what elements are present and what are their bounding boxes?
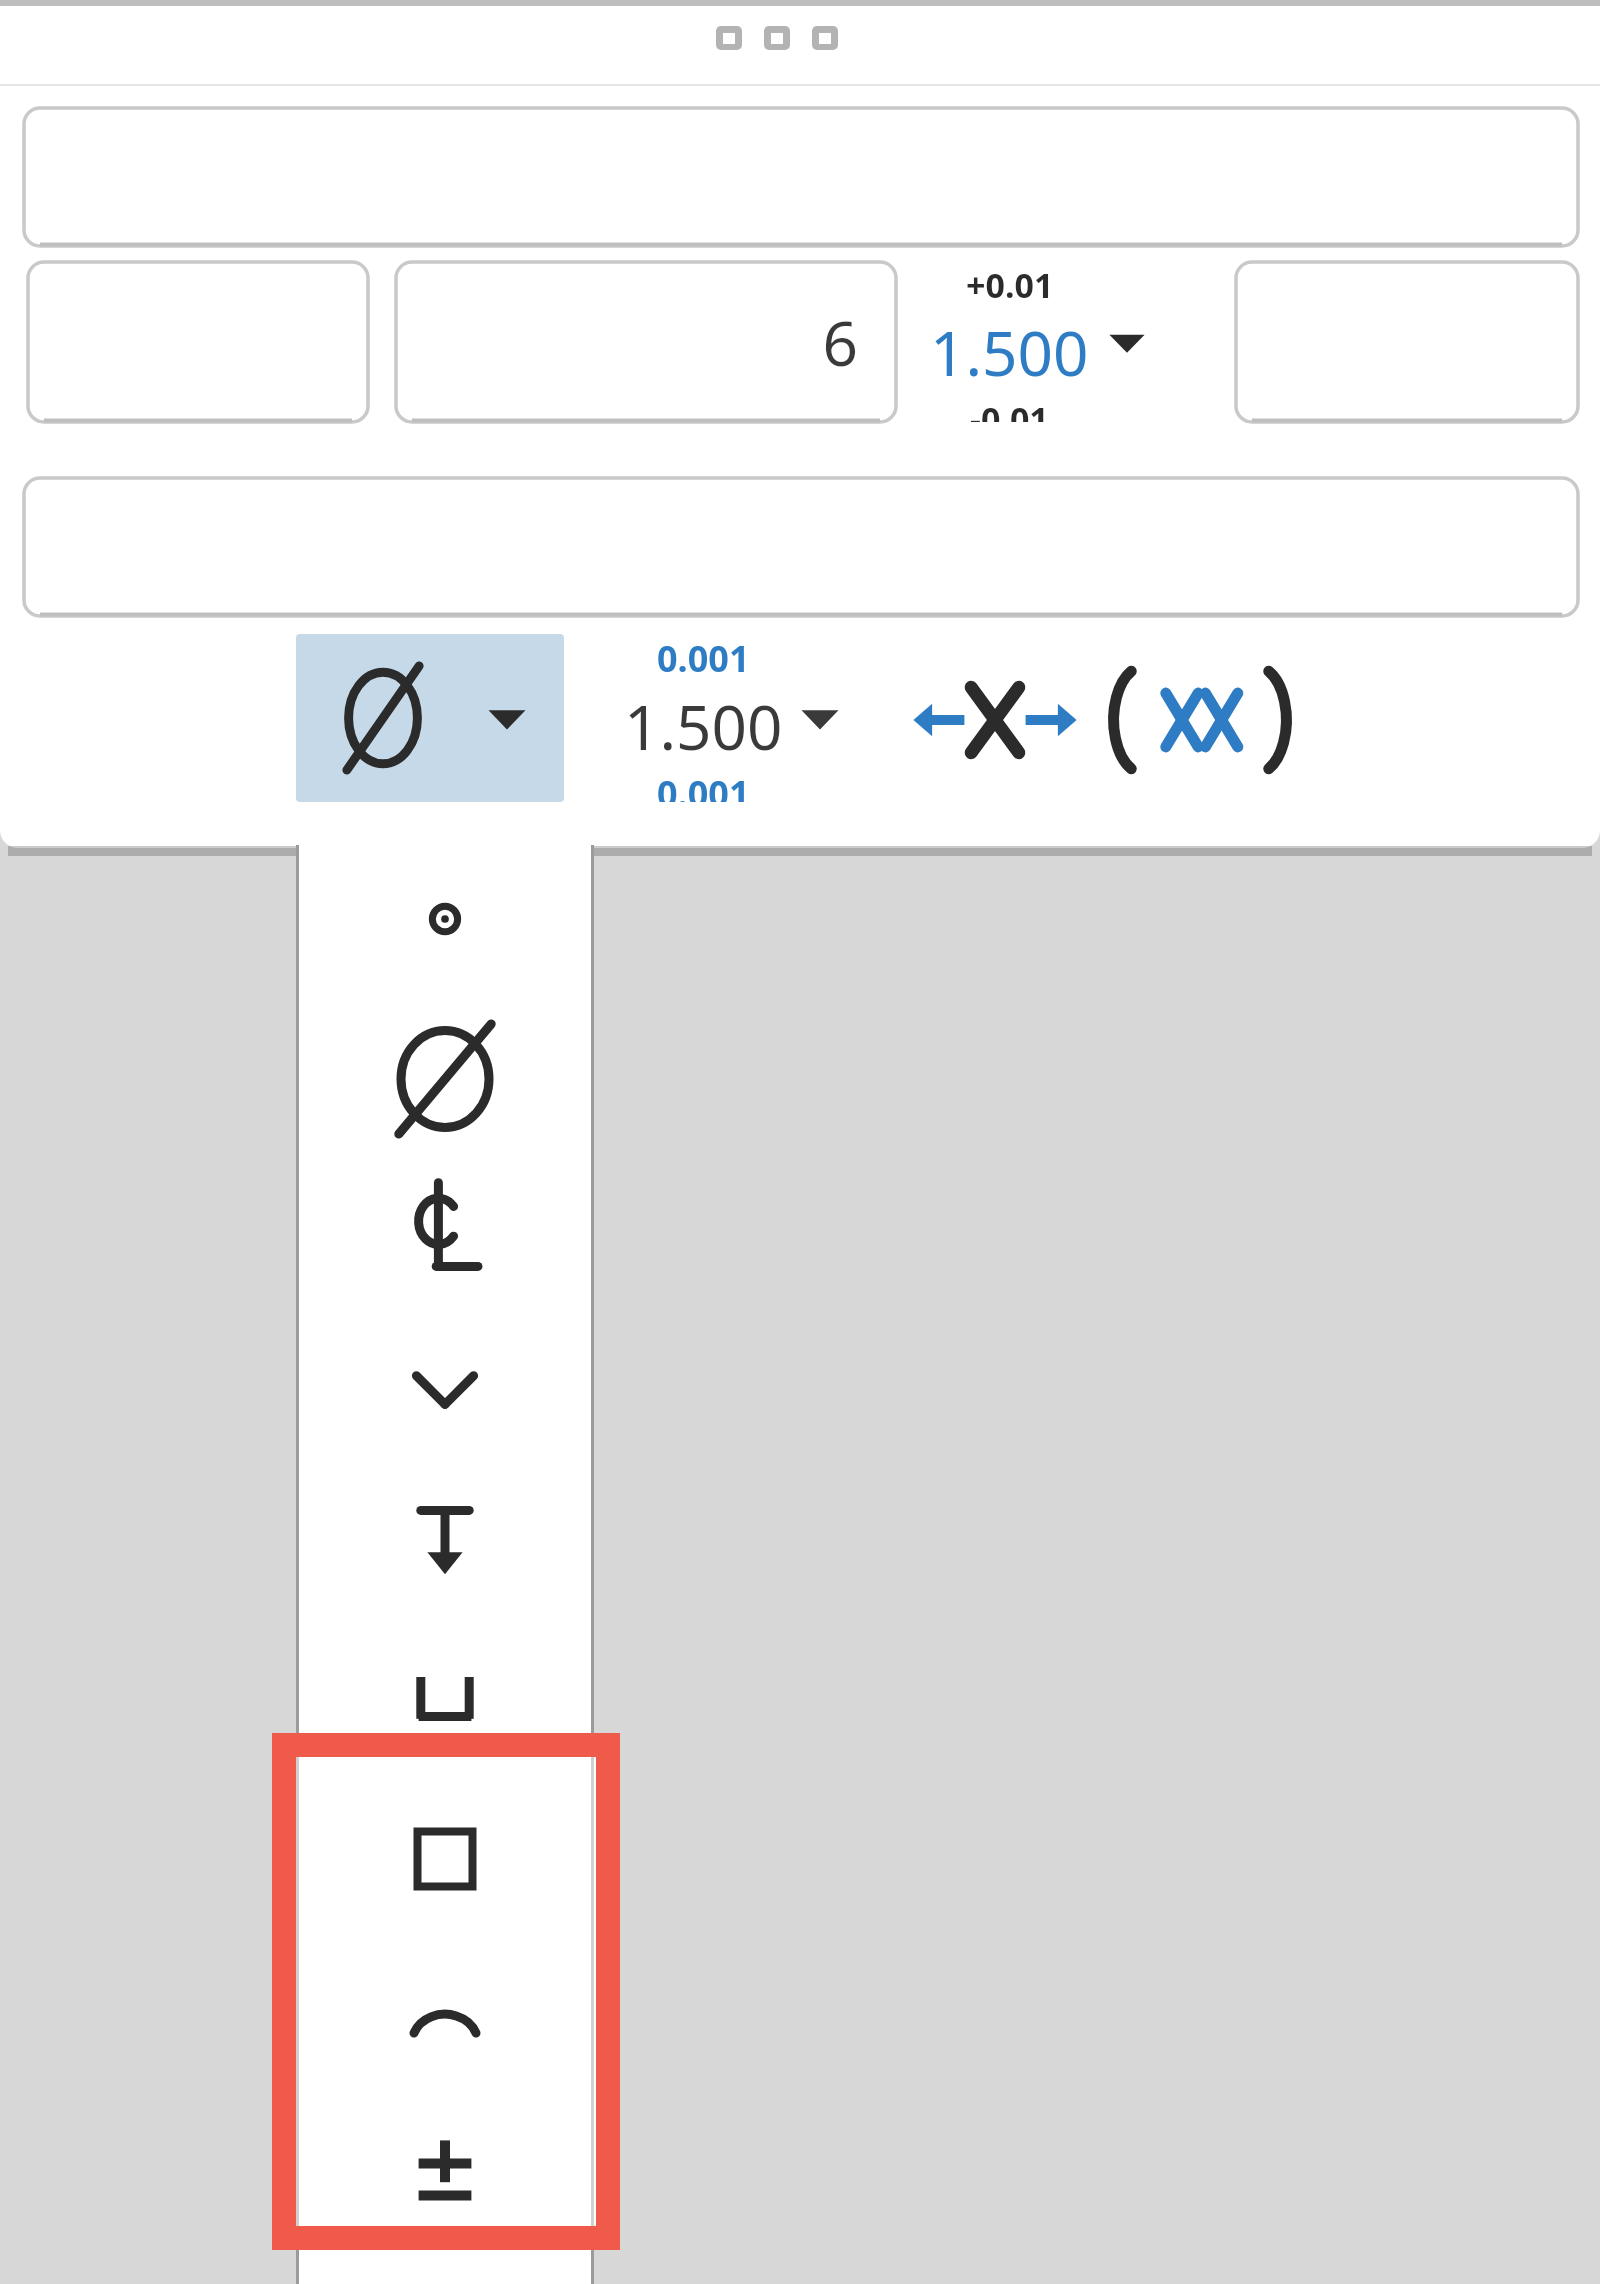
button[interactable]: Square <box>299 1800 591 1918</box>
button[interactable]: Depth <box>299 1480 591 1598</box>
button[interactable]: +0.01 <box>930 262 1147 422</box>
button[interactable]: Diameter symbol, selected <box>296 634 564 802</box>
button[interactable]: Countersink <box>299 1330 591 1448</box>
button[interactable]: 0.001 <box>624 634 841 802</box>
button[interactable]: Counterbore <box>299 1640 591 1758</box>
button[interactable] <box>28 262 368 422</box>
staticText: 1.500 <box>624 684 783 768</box>
staticText: 1.500 <box>930 310 1089 394</box>
button[interactable]: Plus minus <box>299 2110 591 2228</box>
staticText: +0.01 <box>966 262 1054 308</box>
staticText: -0.01 <box>970 396 1049 422</box>
button[interactable] <box>24 108 1578 246</box>
button[interactable]: 6 <box>396 262 896 422</box>
button[interactable] <box>24 478 1578 616</box>
button[interactable]: Counterbore depth <box>299 1170 591 1288</box>
staticText: 0.001 <box>657 634 750 683</box>
staticText: 6 <box>822 300 858 384</box>
button[interactable] <box>1236 262 1578 422</box>
staticText: 0.001 <box>657 769 750 802</box>
button[interactable]: Reference dimension <box>1110 664 1290 776</box>
button[interactable]: Concentric circle <box>299 860 591 978</box>
button[interactable]: Arc <box>299 1975 591 2093</box>
button[interactable]: Diameter <box>299 1020 591 1138</box>
button[interactable]: Horizontal tolerance <box>910 672 1080 768</box>
button[interactable]: Drag handle <box>716 26 838 50</box>
